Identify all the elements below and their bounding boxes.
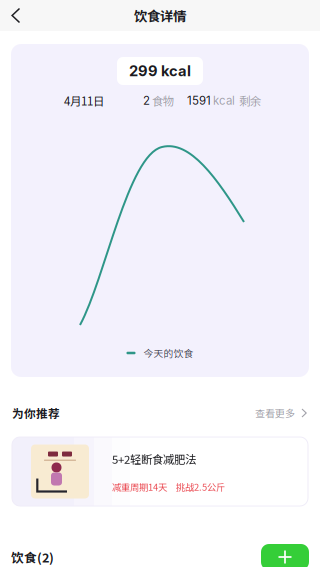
- staticText: 饮食详情: [134, 6, 186, 25]
- staticText: 1591: [187, 94, 211, 107]
- staticText: 挑战2.5公斤: [176, 480, 225, 493]
- button[interactable]: 添加饮食: [261, 544, 309, 567]
- button[interactable]: 查看更多: [255, 406, 308, 420]
- staticText: kcal: [213, 94, 235, 107]
- button[interactable]: 返回: [0, 0, 32, 31]
- staticText: 299 kcal: [129, 62, 191, 80]
- staticText: 为你推荐: [12, 405, 60, 421]
- staticText: 剩余: [239, 92, 261, 109]
- staticText: 查看更多: [255, 406, 295, 420]
- staticText: 4月11日: [64, 92, 104, 109]
- staticText: 减重周期14天: [112, 480, 167, 493]
- staticText: 饮食(2): [11, 548, 54, 566]
- staticText: 今天的饮食: [143, 346, 193, 360]
- staticText: 2: [143, 94, 150, 107]
- button[interactable]: 5+2轻断食减肥法: [12, 437, 308, 506]
- staticText: 食物: [152, 92, 174, 109]
- staticText: 5+2轻断食减肥法: [112, 450, 196, 467]
